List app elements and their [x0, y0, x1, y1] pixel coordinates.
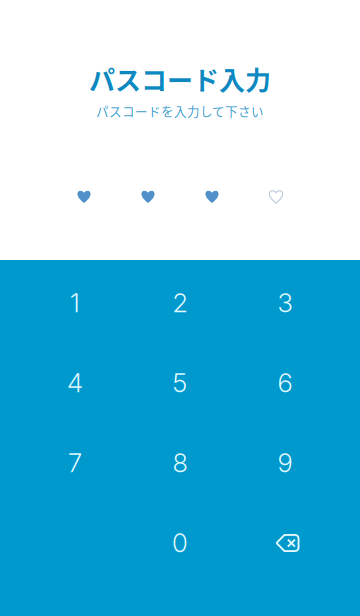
button[interactable]: 8 — [127, 423, 232, 503]
button[interactable]: Delete — [232, 503, 337, 583]
staticText: 0 — [172, 527, 188, 558]
staticText: 7 — [68, 447, 82, 478]
staticText: 5 — [172, 367, 187, 398]
staticText: 6 — [277, 367, 292, 398]
staticText: 9 — [277, 447, 292, 478]
staticText: 2 — [172, 287, 187, 318]
button[interactable]: 9 — [232, 423, 337, 503]
staticText: パスコードを入力して下さい — [96, 102, 264, 120]
button[interactable]: 3 — [232, 263, 337, 343]
button[interactable]: 7 — [22, 423, 127, 503]
button[interactable]: 4 — [22, 343, 127, 423]
staticText: 1 — [70, 287, 80, 318]
button[interactable]: 6 — [232, 343, 337, 423]
staticText: 8 — [172, 447, 187, 478]
button[interactable]: 5 — [127, 343, 232, 423]
button[interactable]: 0 — [127, 503, 232, 583]
staticText: パスコード入力 — [89, 60, 271, 98]
button[interactable]: 1 — [22, 263, 127, 343]
button[interactable]: 2 — [127, 263, 232, 343]
staticText: 4 — [67, 367, 83, 398]
staticText: 3 — [277, 287, 292, 318]
